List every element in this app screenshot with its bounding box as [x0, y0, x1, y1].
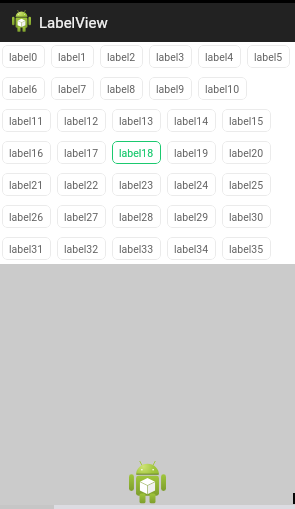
- staticText: label31: [9, 243, 44, 255]
- staticText: label10: [205, 83, 240, 95]
- button[interactable]: label14: [167, 109, 216, 132]
- button[interactable]: label20: [222, 141, 271, 164]
- staticText: label24: [174, 179, 209, 191]
- staticText: label21: [9, 179, 44, 191]
- staticText: label34: [174, 243, 209, 255]
- staticText: label20: [229, 147, 264, 159]
- button[interactable]: label25: [222, 173, 271, 196]
- button[interactable]: label22: [57, 173, 106, 196]
- button[interactable]: label10: [198, 77, 247, 100]
- staticText: label23: [119, 179, 154, 191]
- button[interactable]: label3: [149, 45, 192, 68]
- button[interactable]: label19: [167, 141, 216, 164]
- staticText: label1: [58, 51, 87, 63]
- button[interactable]: label2: [100, 45, 143, 68]
- staticText: label33: [119, 243, 154, 255]
- button[interactable]: label11: [2, 109, 51, 132]
- staticText: label19: [174, 147, 209, 159]
- button[interactable]: label34: [167, 237, 216, 260]
- staticText: label5: [254, 51, 283, 63]
- staticText: label0: [9, 51, 38, 63]
- button[interactable]: label17: [57, 141, 106, 164]
- staticText: label7: [58, 83, 87, 95]
- staticText: label15: [229, 115, 264, 127]
- staticText: label17: [64, 147, 99, 159]
- other: App icon: [12, 10, 31, 32]
- button[interactable]: label4: [198, 45, 241, 68]
- staticText: label12: [64, 115, 99, 127]
- button[interactable]: label26: [2, 205, 51, 228]
- button[interactable]: label32: [57, 237, 106, 260]
- button[interactable]: label28: [112, 205, 161, 228]
- staticText: label32: [64, 243, 99, 255]
- button[interactable]: label33: [112, 237, 161, 260]
- staticText: label6: [9, 83, 38, 95]
- staticText: label27: [64, 211, 99, 223]
- staticText: label22: [64, 179, 99, 191]
- staticText: label9: [156, 83, 185, 95]
- staticText: LabelView: [39, 14, 108, 32]
- staticText: label28: [119, 211, 154, 223]
- button[interactable]: label16: [2, 141, 51, 164]
- button[interactable]: label18: [112, 141, 161, 164]
- button[interactable]: label13: [112, 109, 161, 132]
- button[interactable]: label0: [2, 45, 45, 68]
- button[interactable]: label9: [149, 77, 192, 100]
- staticText: label13: [119, 115, 154, 127]
- staticText: label29: [174, 211, 209, 223]
- staticText: label25: [229, 179, 264, 191]
- button[interactable]: label30: [222, 205, 271, 228]
- staticText: label2: [107, 51, 136, 63]
- staticText: label18: [119, 147, 154, 159]
- staticText: label16: [9, 147, 44, 159]
- button[interactable]: label8: [100, 77, 143, 100]
- button[interactable]: label35: [222, 237, 271, 260]
- button[interactable]: label12: [57, 109, 106, 132]
- staticText: label3: [156, 51, 185, 63]
- staticText: label11: [9, 115, 44, 127]
- button[interactable]: label5: [247, 45, 290, 68]
- button[interactable]: label15: [222, 109, 271, 132]
- button[interactable]: label24: [167, 173, 216, 196]
- button[interactable]: label21: [2, 173, 51, 196]
- button[interactable]: label23: [112, 173, 161, 196]
- button[interactable]: label31: [2, 237, 51, 260]
- staticText: label14: [174, 115, 209, 127]
- button[interactable]: label27: [57, 205, 106, 228]
- staticText: label35: [229, 243, 264, 255]
- staticText: label8: [107, 83, 136, 95]
- staticText: label26: [9, 211, 44, 223]
- button[interactable]: label7: [51, 77, 94, 100]
- button[interactable]: label1: [51, 45, 94, 68]
- button[interactable]: label6: [2, 77, 45, 100]
- button[interactable]: label29: [167, 205, 216, 228]
- staticText: label4: [205, 51, 234, 63]
- staticText: label30: [229, 211, 264, 223]
